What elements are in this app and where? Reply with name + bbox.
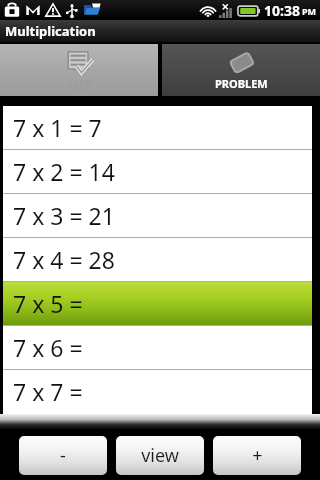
button[interactable]: PROBLEM [162, 44, 320, 96]
button[interactable]: 7 x 1 = 7 [3, 106, 312, 149]
button[interactable]: + [213, 436, 301, 475]
staticText: Multiplication [5, 22, 96, 40]
button[interactable]: - [19, 436, 107, 475]
staticText: 7 x 1 = 7 [13, 112, 102, 143]
button[interactable]: 7 x 4 = 28 [3, 238, 312, 281]
button[interactable]: 7 x 3 = 21 [3, 194, 312, 237]
staticText: 7 x 3 = 21 [13, 200, 115, 231]
button[interactable]: 7 x 2 = 14 [3, 150, 312, 193]
button[interactable]: 7 x 5 = [3, 282, 312, 325]
button[interactable]: LIST [0, 44, 158, 96]
staticText: 7 x 2 = 14 [13, 156, 115, 187]
button[interactable]: 7 x 6 = [3, 326, 312, 369]
staticText: view [141, 443, 179, 468]
staticText: 7 x 6 = [13, 332, 83, 363]
staticText: PROBLEM [215, 76, 268, 91]
staticText: + [252, 443, 263, 468]
staticText: 10:38 [264, 1, 300, 20]
staticText: PM [302, 5, 317, 17]
staticText: 7 x 4 = 28 [13, 244, 115, 275]
staticText: 7 x 7 = [13, 376, 83, 407]
staticText: - [60, 443, 66, 468]
staticText: 7 x 5 = [13, 288, 83, 319]
button[interactable]: 7 x 7 = [3, 370, 312, 413]
button[interactable]: view [116, 436, 204, 475]
